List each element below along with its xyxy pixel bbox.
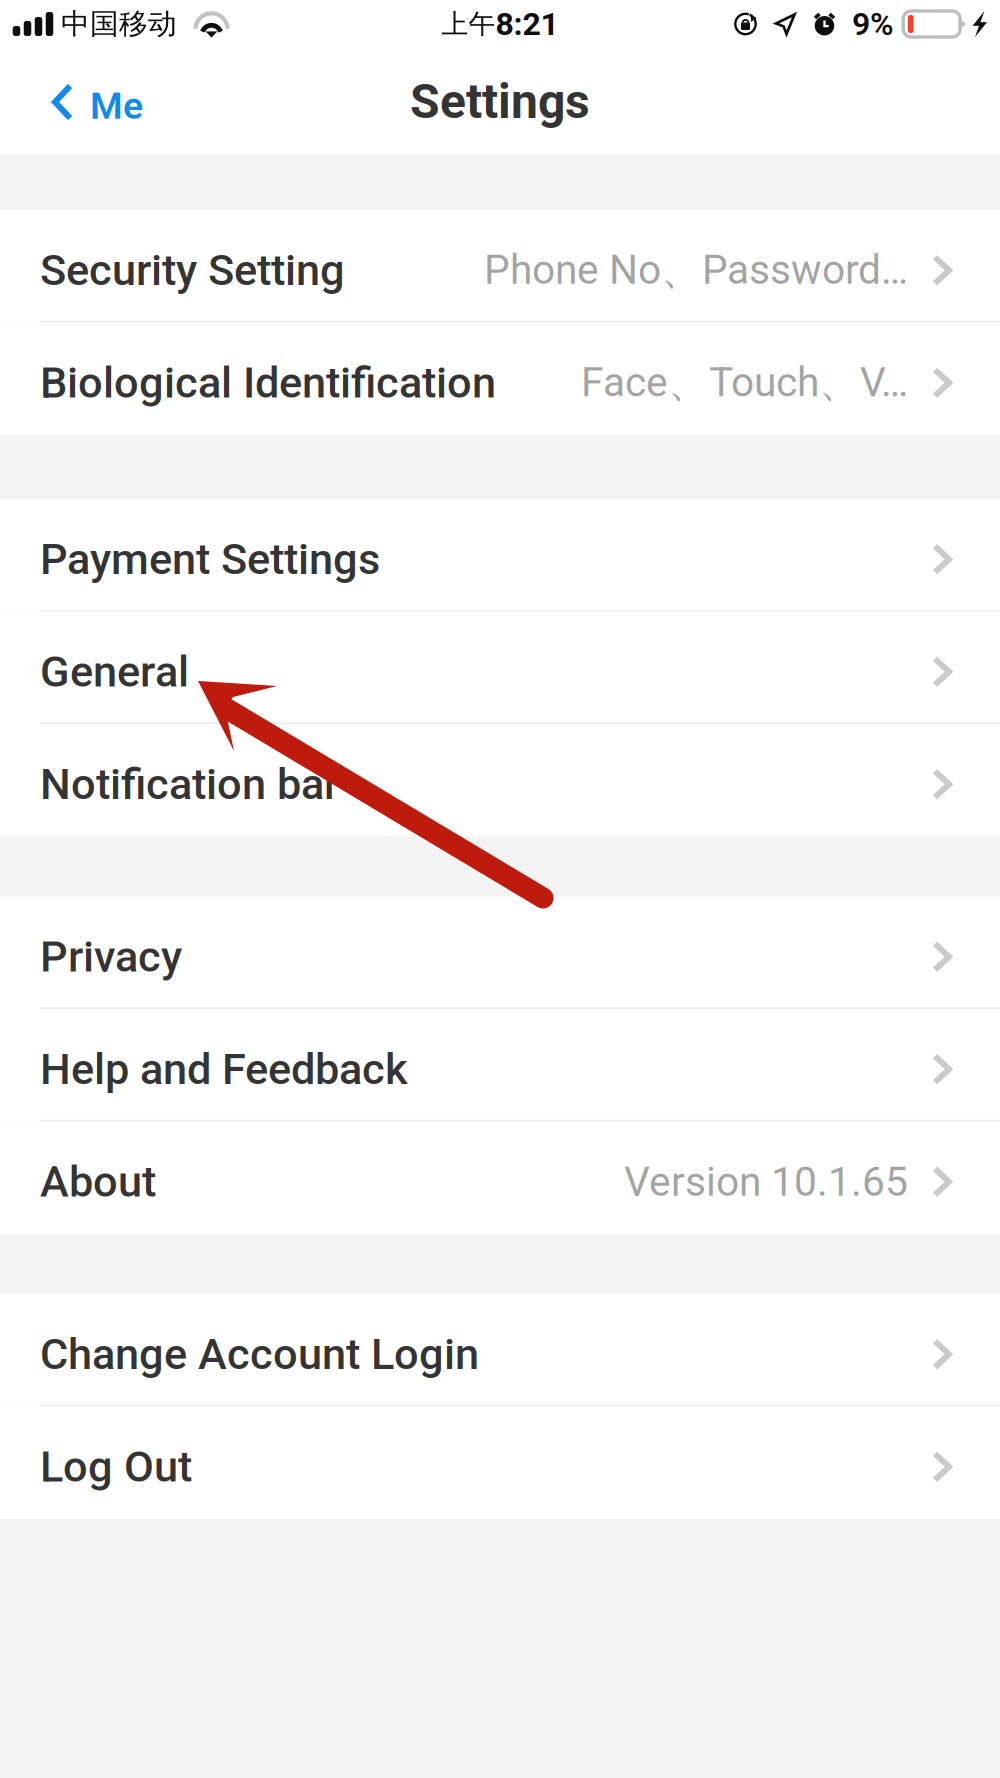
staticText: Notification bar [40,759,339,810]
staticText: Biological Identification [40,357,496,408]
staticText: Face、Touch、V… [581,357,908,408]
staticText: General [40,646,189,697]
button[interactable]: General [0,611,1000,724]
staticText: About [40,1156,156,1207]
staticText: Log Out [40,1441,192,1492]
staticText: Payment Settings [40,534,380,585]
staticText: Change Account Login [40,1329,479,1380]
staticText: 8:21 [495,5,558,43]
button[interactable]: About [0,1121,1000,1234]
button[interactable]: Help and Feedback [0,1009,1000,1121]
staticText: 中国移动 [61,6,177,42]
button[interactable]: Log Out [0,1406,1000,1519]
staticText: Security Setting [40,245,345,296]
staticText: Me [90,84,143,128]
staticText: 上午 [441,7,495,41]
button[interactable]: Security Setting [0,210,1000,322]
button[interactable]: Change Account Login [0,1294,1000,1406]
staticText: Privacy [40,931,182,982]
button[interactable]: Biological Identification [0,322,1000,435]
staticText: 9% [852,5,894,43]
button[interactable]: Me [0,60,167,154]
staticText: Phone No、Password… [484,245,908,296]
button[interactable]: Privacy [0,896,1000,1009]
staticText: Version 10.1.65 [624,1158,908,1206]
staticText: Settings [410,73,590,130]
button[interactable]: Notification bar [0,724,1000,836]
staticText: Help and Feedback [40,1044,408,1095]
button[interactable]: Payment Settings [0,499,1000,611]
